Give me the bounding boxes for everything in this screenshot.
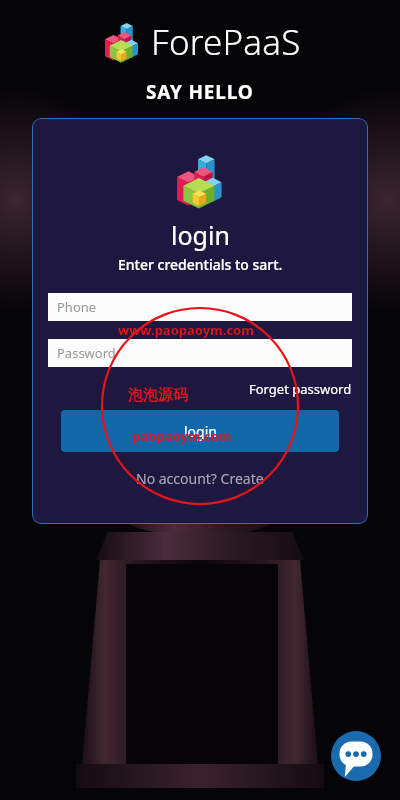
- staticText: Phone: [57, 298, 97, 316]
- button[interactable]: Phone: [48, 293, 352, 321]
- staticText: Enter credentials to sart.: [118, 255, 283, 274]
- button[interactable]: login: [61, 410, 339, 452]
- staticText: ForePaaS: [151, 18, 301, 66]
- staticText: www.paopaoym.com: [118, 321, 254, 339]
- staticText: login: [184, 422, 217, 441]
- staticText: 泡泡源码: [128, 386, 188, 405]
- staticText: Forget password: [249, 380, 352, 398]
- button[interactable]: Password: [48, 339, 352, 367]
- button[interactable]: No account? Create: [136, 469, 264, 488]
- staticText: paopaoym.com: [132, 427, 232, 445]
- staticText: login: [171, 218, 230, 252]
- button[interactable]: Forget password: [249, 380, 352, 398]
- staticText: No account? Create: [136, 469, 264, 488]
- staticText: Password: [57, 344, 116, 362]
- button[interactable]: Open chat support: [331, 731, 381, 781]
- staticText: SAY HELLO: [146, 79, 254, 105]
